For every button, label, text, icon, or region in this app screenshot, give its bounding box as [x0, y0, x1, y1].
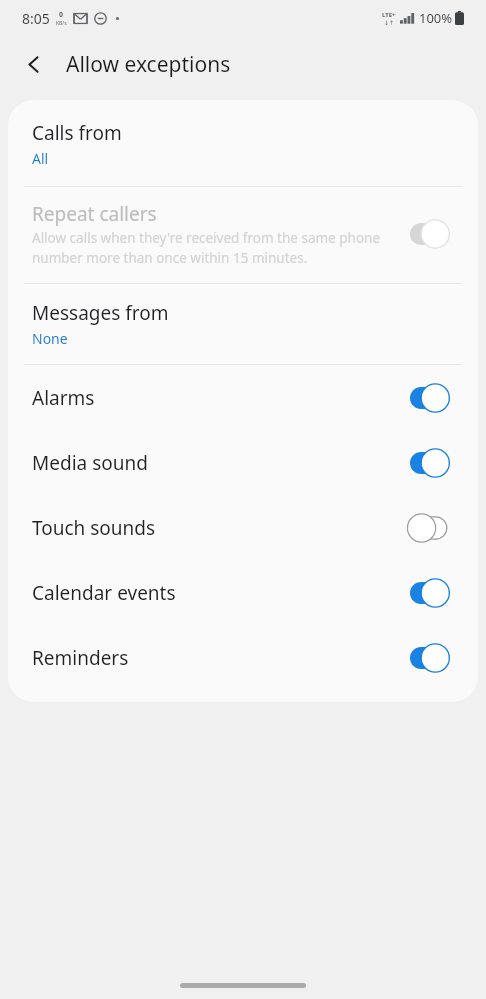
- staticText: Calendar events: [32, 580, 410, 606]
- staticText: Allow calls when they're received from t…: [32, 229, 402, 267]
- button[interactable]: Calendar events: [8, 560, 478, 625]
- button[interactable]: Back: [14, 44, 54, 84]
- staticText: Media sound: [32, 450, 410, 476]
- button[interactable]: Alarms: [8, 365, 478, 430]
- staticText: All: [32, 149, 49, 168]
- staticText: 0: [59, 10, 64, 20]
- staticText: Repeat callers: [32, 201, 157, 227]
- staticText: Touch sounds: [32, 515, 410, 541]
- staticText: Messages from: [32, 300, 169, 326]
- staticText: Calls from: [32, 120, 122, 146]
- button[interactable]: Repeat callers: [8, 187, 478, 283]
- button[interactable]: Reminders: [8, 625, 478, 690]
- staticText: None: [32, 329, 68, 348]
- button[interactable]: Toggle: [410, 383, 456, 413]
- staticText: 100%: [419, 9, 453, 27]
- button[interactable]: Toggle: [410, 578, 456, 608]
- button[interactable]: Touch sounds: [8, 495, 478, 560]
- button[interactable]: Messages from: [8, 284, 478, 364]
- staticText: Allow exceptions: [66, 50, 231, 79]
- staticText: ↓↑: [384, 19, 395, 26]
- staticText: KB/s: [56, 20, 67, 27]
- button[interactable]: Toggle: [410, 643, 456, 673]
- button[interactable]: Toggle: [410, 219, 456, 249]
- staticText: Reminders: [32, 645, 410, 671]
- staticText: Alarms: [32, 385, 410, 411]
- button[interactable]: Calls from: [8, 100, 478, 186]
- button[interactable]: Toggle: [410, 448, 456, 478]
- button[interactable]: Media sound: [8, 430, 478, 495]
- staticText: LTE+: [382, 11, 396, 19]
- button[interactable]: Toggle: [410, 513, 456, 543]
- staticText: 8:05: [22, 9, 50, 28]
